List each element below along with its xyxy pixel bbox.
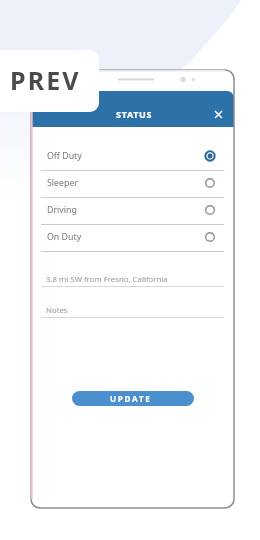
staticText: PREV [10,63,81,97]
staticText: On Duty [47,231,205,243]
staticText: Notes [46,305,68,316]
staticText: STATUS [116,108,153,120]
button[interactable]: Driving [41,198,224,225]
staticText: 3.8 mi SW from Fresno, California [46,274,168,285]
button[interactable]: On Duty [41,225,224,252]
staticText: UPDATE [110,393,152,404]
button[interactable]: Notes [41,303,224,318]
button[interactable]: PREV [0,50,99,112]
button[interactable]: 3.8 mi SW from Fresno, California [41,272,224,287]
staticText: Driving [47,204,205,216]
staticText: Sleeper [47,177,205,189]
button[interactable]: Sleeper [41,171,224,198]
staticText: Off Duty [47,150,205,162]
button[interactable]: UPDATE [72,391,194,406]
button[interactable]: Close [211,107,225,121]
button[interactable]: Off Duty [41,144,224,171]
